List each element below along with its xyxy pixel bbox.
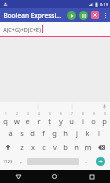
button[interactable]: , bbox=[15, 154, 26, 169]
staticText: A(C+G)+D(C+E) bbox=[3, 26, 41, 33]
button[interactable]: 6 bbox=[55, 111, 66, 126]
button[interactable]: Voice input bbox=[102, 104, 107, 109]
button[interactable]: Backspace bbox=[93, 140, 110, 154]
button[interactable]: 9 bbox=[88, 111, 99, 126]
staticText: b bbox=[63, 142, 68, 152]
staticText: t bbox=[48, 116, 51, 126]
button[interactable]: s bbox=[16, 126, 27, 140]
staticText: h bbox=[63, 128, 68, 138]
staticText: d bbox=[30, 128, 35, 138]
staticText: u bbox=[69, 116, 74, 126]
staticText: w bbox=[14, 116, 20, 126]
staticText: n bbox=[74, 142, 79, 152]
staticText: 2 bbox=[16, 112, 18, 116]
button[interactable]: c bbox=[38, 140, 49, 154]
staticText: m bbox=[84, 142, 92, 152]
button[interactable]: Shift bbox=[0, 140, 16, 154]
button[interactable]: 7 bbox=[66, 111, 77, 126]
button[interactable]: ?123 bbox=[0, 154, 15, 169]
button[interactable]: . bbox=[80, 154, 91, 169]
button[interactable]: d bbox=[27, 126, 38, 140]
staticText: g bbox=[52, 128, 57, 138]
button[interactable]: m bbox=[82, 140, 93, 154]
staticText: x bbox=[31, 142, 35, 152]
button[interactable]: a bbox=[5, 126, 16, 140]
staticText: k bbox=[85, 128, 90, 138]
staticText: 3 bbox=[27, 112, 29, 116]
button[interactable]: 4 bbox=[33, 111, 44, 126]
staticText: v bbox=[53, 142, 57, 152]
button[interactable]: 8 bbox=[77, 111, 88, 126]
staticText: q bbox=[3, 116, 8, 126]
button[interactable]: k bbox=[82, 126, 93, 140]
staticText: 8 bbox=[82, 112, 84, 116]
button[interactable]: v bbox=[49, 140, 60, 154]
button[interactable]: Pause bbox=[77, 9, 89, 21]
staticText: Boolean Expressi… bbox=[3, 11, 62, 20]
staticText: 8:19 bbox=[100, 2, 108, 7]
button[interactable]: j bbox=[71, 126, 82, 140]
staticText: a bbox=[8, 128, 13, 138]
staticText: 6 bbox=[60, 112, 62, 116]
staticText: 7 bbox=[71, 112, 73, 116]
staticText: 5 bbox=[49, 112, 51, 116]
staticText: p bbox=[102, 116, 107, 126]
button[interactable]: 0 bbox=[99, 111, 110, 126]
staticText: s bbox=[20, 128, 24, 138]
button[interactable]: 1 bbox=[0, 111, 11, 126]
staticText: ?123 bbox=[3, 159, 13, 165]
button[interactable]: More options bbox=[101, 9, 109, 21]
button[interactable]: x bbox=[27, 140, 38, 154]
staticText: e bbox=[25, 116, 30, 126]
button[interactable]: n bbox=[71, 140, 82, 154]
button[interactable]: Enter bbox=[91, 154, 110, 169]
button[interactable]: l bbox=[93, 126, 104, 140]
staticText: y bbox=[59, 116, 63, 126]
staticText: , bbox=[20, 157, 22, 165]
staticText: 9 bbox=[93, 112, 95, 116]
button[interactable]: Clear bbox=[89, 9, 101, 21]
staticText: i bbox=[82, 116, 84, 126]
button[interactable]: g bbox=[49, 126, 60, 140]
button[interactable]: z bbox=[16, 140, 27, 154]
staticText: 0 bbox=[104, 112, 106, 116]
button[interactable]: Recent apps bbox=[73, 170, 110, 183]
button[interactable]: f bbox=[38, 126, 49, 140]
button[interactable]: 2 bbox=[11, 111, 22, 126]
button[interactable]: 3 bbox=[22, 111, 33, 126]
staticText: o bbox=[91, 116, 96, 126]
staticText: r bbox=[37, 116, 41, 126]
button[interactable]: b bbox=[60, 140, 71, 154]
button[interactable]: 5 bbox=[44, 111, 55, 126]
button[interactable]: Back bbox=[0, 170, 36, 183]
staticText: z bbox=[20, 142, 24, 152]
staticText: j bbox=[76, 128, 78, 138]
button[interactable]: A(C+G)+D(C+E) bbox=[0, 22, 110, 36]
button[interactable]: h bbox=[60, 126, 71, 140]
staticText: c bbox=[42, 142, 46, 152]
staticText: f bbox=[42, 128, 45, 138]
button[interactable]: Run bbox=[65, 9, 77, 21]
button[interactable]: Home bbox=[36, 170, 73, 183]
staticText: 1 bbox=[5, 112, 7, 116]
staticText: . bbox=[85, 157, 87, 165]
staticText: l bbox=[98, 128, 100, 138]
staticText: 4 bbox=[38, 112, 40, 116]
